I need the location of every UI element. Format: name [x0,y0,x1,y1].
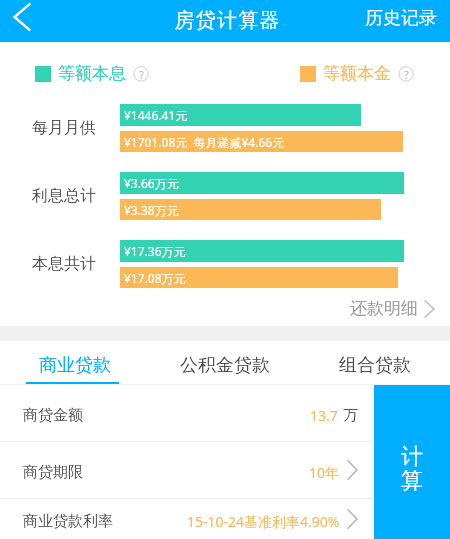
button[interactable]: 商贷金额 [0,385,450,441]
button[interactable]: 等额本息 [35,63,149,84]
staticText: 利息总计 [32,186,96,206]
staticText: 计 算 [401,443,423,494]
button[interactable]: 计 算 [374,385,450,539]
staticText: 历史记录 [365,7,437,30]
staticText: 商贷期限 [23,463,83,482]
button[interactable]: 商业贷款利率 [0,499,450,539]
staticText: 组合贷款 [339,354,411,377]
staticText: ? [139,67,144,82]
staticText: 本息共计 [32,254,96,274]
staticText: 等额本金 [323,63,391,84]
staticText: 万 [343,406,358,425]
staticText: 公积金贷款 [180,354,270,377]
staticText: ¥3.66万元 [124,175,179,191]
button[interactable]: 等额本金 [300,63,414,84]
button[interactable]: 商业贷款 [0,341,150,385]
staticText: 商贷金额 [23,406,83,425]
staticText: 等额本息 [58,63,126,84]
staticText: 每月月供 [32,118,96,138]
button[interactable]: 还款明细 [340,296,450,321]
staticText: 10年 [309,463,340,482]
staticText: ¥1701.08元 每月递减¥4.66元 [124,134,285,150]
button[interactable]: 历史记录 [351,0,450,42]
staticText: ? [404,67,409,82]
staticText: 商业贷款 [39,354,111,377]
staticText: 15-10-24基准利率4.90% [187,512,340,531]
staticText: ¥3.38万元 [124,202,179,218]
staticText: ¥1446.41元 [124,107,188,123]
staticText: 商业贷款利率 [23,512,113,531]
staticText: 还款明细 [350,298,418,319]
staticText: ¥17.08万元 [124,270,186,286]
button[interactable]: Back [0,0,44,42]
staticText: 13.7 [310,406,338,425]
button[interactable]: 商贷期限 [0,442,450,498]
button[interactable]: 公积金贷款 [150,341,300,385]
staticText: ¥17.36万元 [124,243,186,259]
staticText: 房贷计算器 [174,8,280,33]
button[interactable]: 组合贷款 [300,341,450,385]
